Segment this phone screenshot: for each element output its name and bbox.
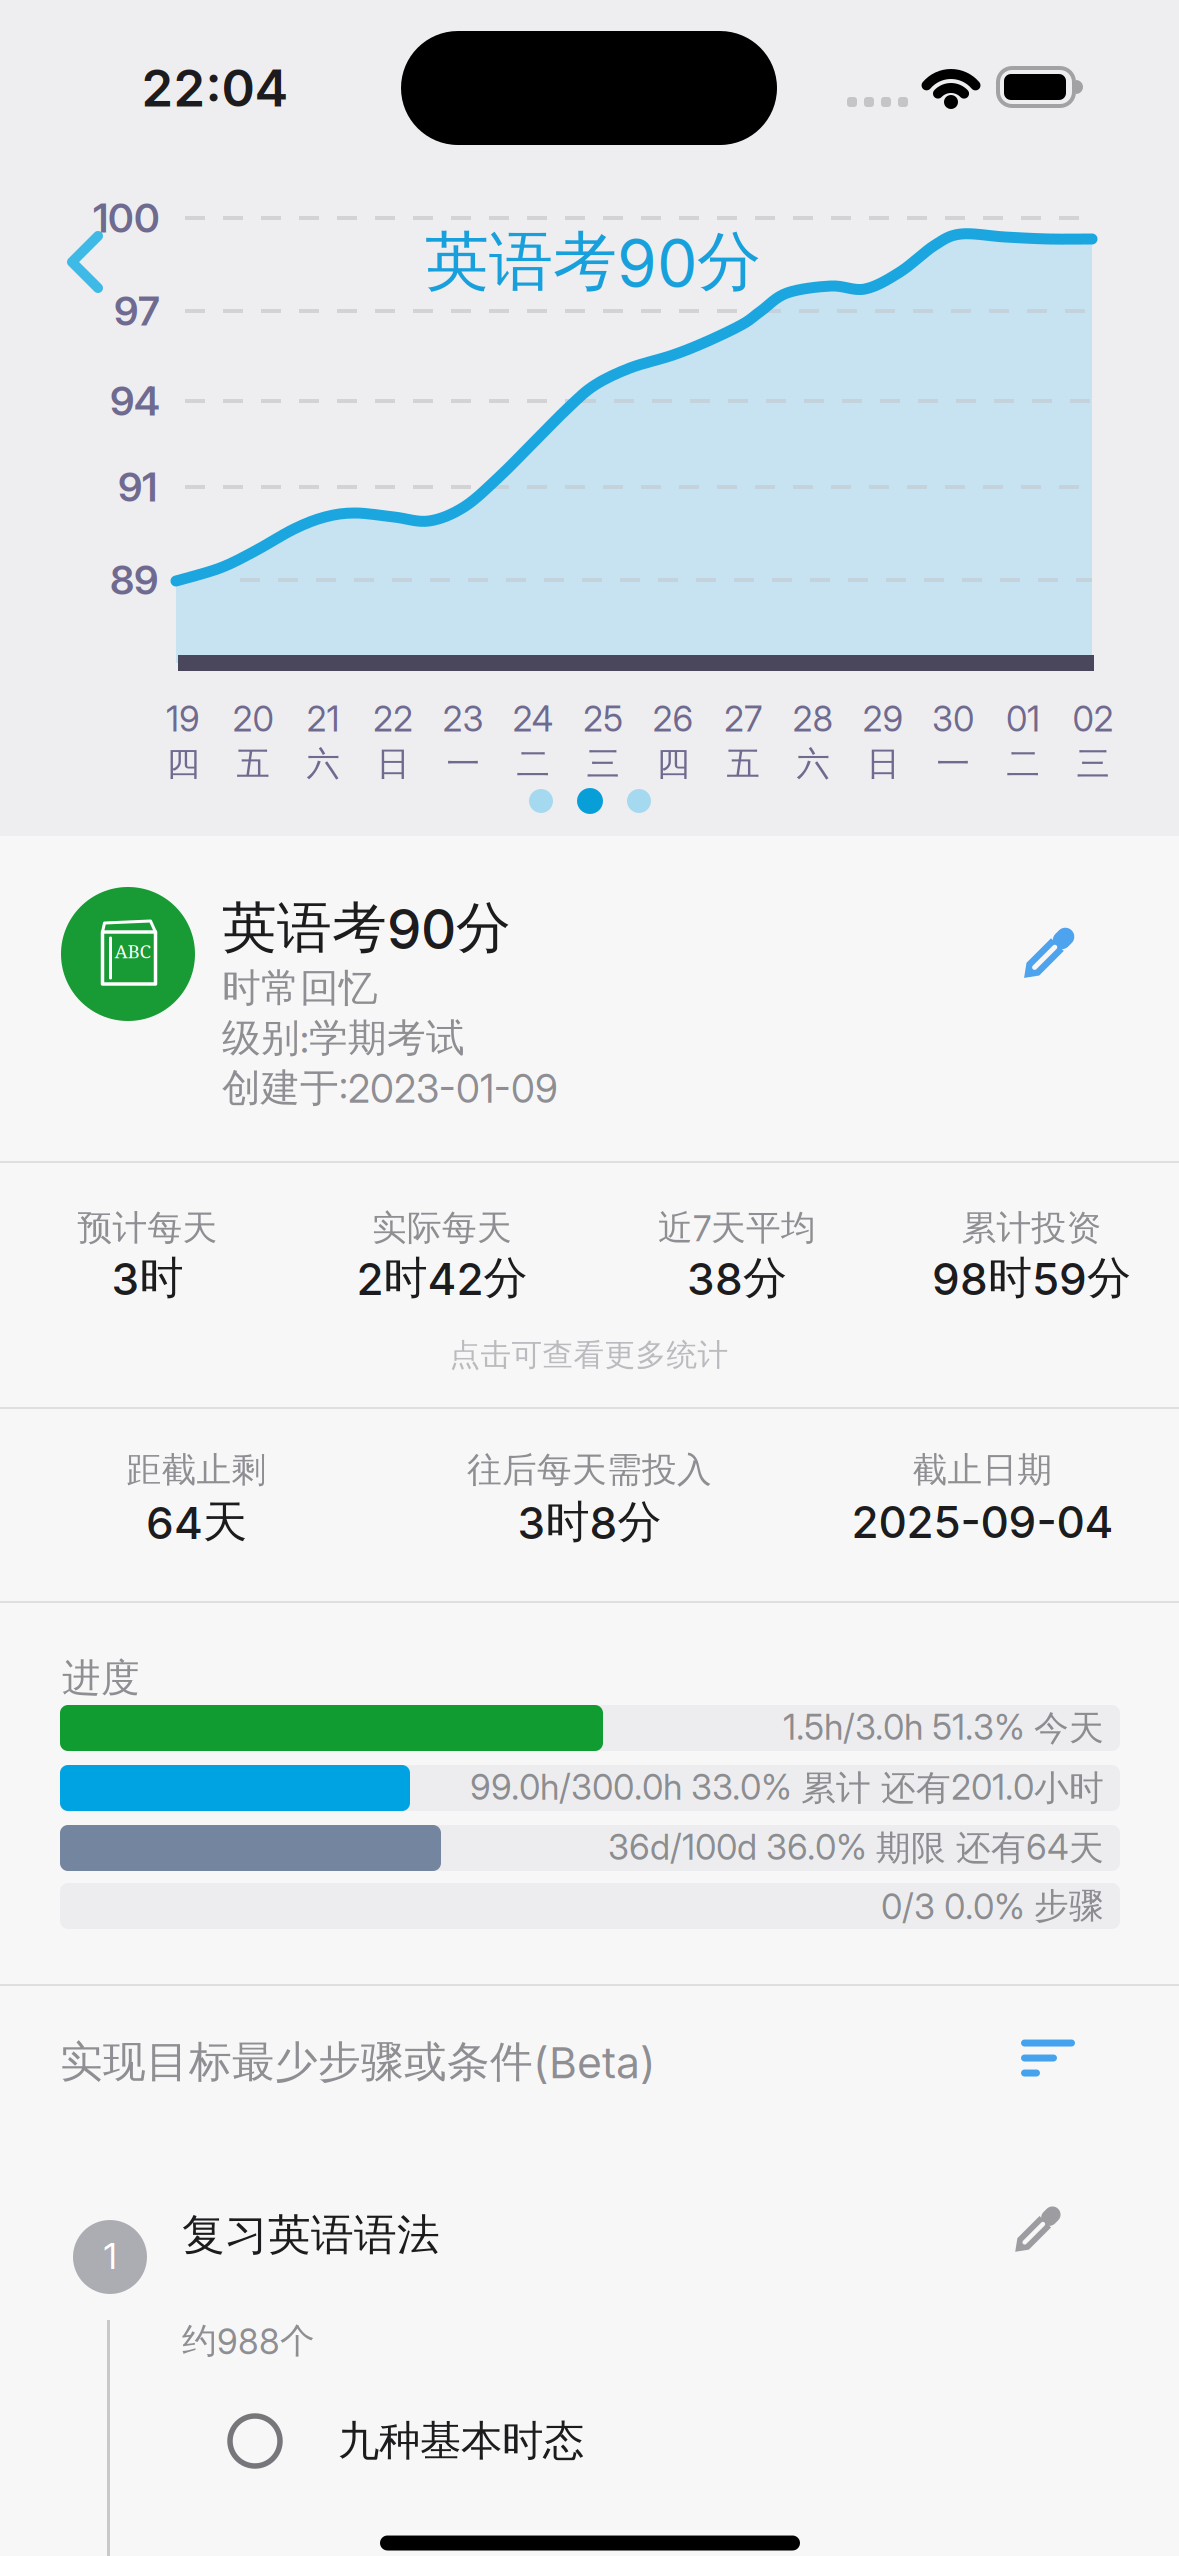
staticText: 四 <box>656 743 689 784</box>
staticText: 二 <box>516 743 549 784</box>
button[interactable]: Edit step <box>1007 2204 1063 2260</box>
staticText: 距截止剩 <box>126 1449 266 1491</box>
staticText: 三 <box>1076 743 1109 784</box>
staticText: ABC <box>114 938 150 964</box>
staticText: 26 <box>652 699 693 739</box>
staticText: 21 <box>306 699 339 739</box>
staticText: 1 <box>103 2235 116 2277</box>
button[interactable]: 点击可查看更多统计 <box>449 1336 728 1374</box>
staticText: 3时 <box>111 1251 183 1305</box>
staticText: 四 <box>166 743 199 784</box>
staticText: 3时8分 <box>517 1495 661 1549</box>
staticText: 23 <box>442 699 483 739</box>
staticText: 27 <box>724 699 762 739</box>
staticText: 九种基本时态 <box>338 2416 584 2466</box>
staticText: 99.0h/300.0h 33.0% 累计 还有201.0小时 <box>470 1767 1104 1809</box>
staticText: 64天 <box>146 1495 247 1549</box>
staticText: 01 <box>1006 699 1040 739</box>
staticText: 1.5h/3.0h 51.3% 今天 <box>783 1707 1104 1749</box>
staticText: 94 <box>110 377 160 425</box>
staticText: 98时59分 <box>932 1251 1131 1305</box>
staticText: 一 <box>446 743 479 784</box>
staticText: 22 <box>373 699 413 739</box>
button[interactable]: Edit goal <box>1015 925 1077 987</box>
staticText: 创建于:2023-01-09 <box>222 1064 558 1112</box>
staticText: 28 <box>792 699 833 739</box>
staticText: 点击可查看更多统计 <box>449 1336 728 1374</box>
staticText: 英语考90分 <box>425 223 761 301</box>
staticText: 进度 <box>62 1654 140 1702</box>
staticText: 29 <box>862 699 903 739</box>
staticText: 02 <box>1072 699 1113 739</box>
staticText: 24 <box>512 699 553 739</box>
staticText: 往后每天需投入 <box>467 1449 712 1491</box>
staticText: 近7天平均 <box>658 1207 816 1249</box>
staticText: 复习英语语法 <box>182 2209 440 2261</box>
staticText: 日 <box>376 743 409 784</box>
staticText: 实现目标最少步骤或条件(Beta) <box>60 2036 656 2088</box>
staticText: 实际每天 <box>372 1207 512 1249</box>
staticText: 38分 <box>687 1251 787 1305</box>
staticText: 五 <box>726 743 759 784</box>
staticText: 截止日期 <box>912 1449 1052 1491</box>
staticText: 五 <box>236 743 269 784</box>
staticText: 25 <box>583 699 623 739</box>
staticText: 累计投资 <box>962 1207 1102 1249</box>
staticText: 100 <box>93 194 160 242</box>
staticText: 2时42分 <box>357 1251 528 1305</box>
staticText: 六 <box>796 743 829 784</box>
staticText: 预计每天 <box>77 1207 217 1249</box>
staticText: 20 <box>232 699 273 739</box>
staticText: 2025-09-04 <box>851 1496 1113 1548</box>
staticText: 30 <box>932 699 974 739</box>
staticText: 19 <box>166 699 200 739</box>
staticText: 89 <box>110 556 158 604</box>
staticText: 约988个 <box>182 2320 315 2362</box>
staticText: 一 <box>936 743 969 784</box>
staticText: 时常回忆 <box>222 964 378 1012</box>
button[interactable]: 九种基本时态 <box>230 2406 700 2476</box>
staticText: 97 <box>114 287 160 335</box>
staticText: 日 <box>866 743 899 784</box>
staticText: 三 <box>586 743 619 784</box>
staticText: 六 <box>306 743 339 784</box>
staticText: 级别:学期考试 <box>222 1014 465 1062</box>
button[interactable]: Back <box>67 231 105 293</box>
staticText: 二 <box>1006 743 1039 784</box>
staticText: 22:04 <box>141 58 288 118</box>
button[interactable]: Sort <box>1021 2039 1075 2077</box>
staticText: 36d/100d 36.0% 期限 还有64天 <box>608 1827 1104 1869</box>
staticText: 英语考90分 <box>222 894 511 961</box>
staticText: 91 <box>118 463 157 511</box>
staticText: 0/3 0.0% 步骤 <box>881 1885 1104 1927</box>
